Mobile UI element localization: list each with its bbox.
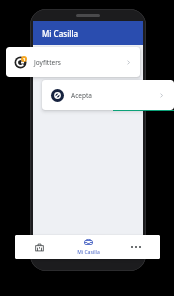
staticText: Joyfitters bbox=[34, 58, 61, 67]
staticText: Acepta bbox=[71, 91, 92, 100]
staticText: Mi Casilla bbox=[77, 249, 100, 256]
button[interactable]: Mi Casilla bbox=[64, 235, 112, 259]
button[interactable]: Documentos bbox=[15, 235, 64, 259]
button[interactable]: Más opciones bbox=[112, 235, 160, 259]
staticText: 1 bbox=[23, 57, 26, 62]
button[interactable]: Acepta bbox=[42, 80, 174, 110]
staticText: Mi Casilla bbox=[42, 28, 79, 39]
button[interactable]: 1 bbox=[6, 47, 140, 77]
